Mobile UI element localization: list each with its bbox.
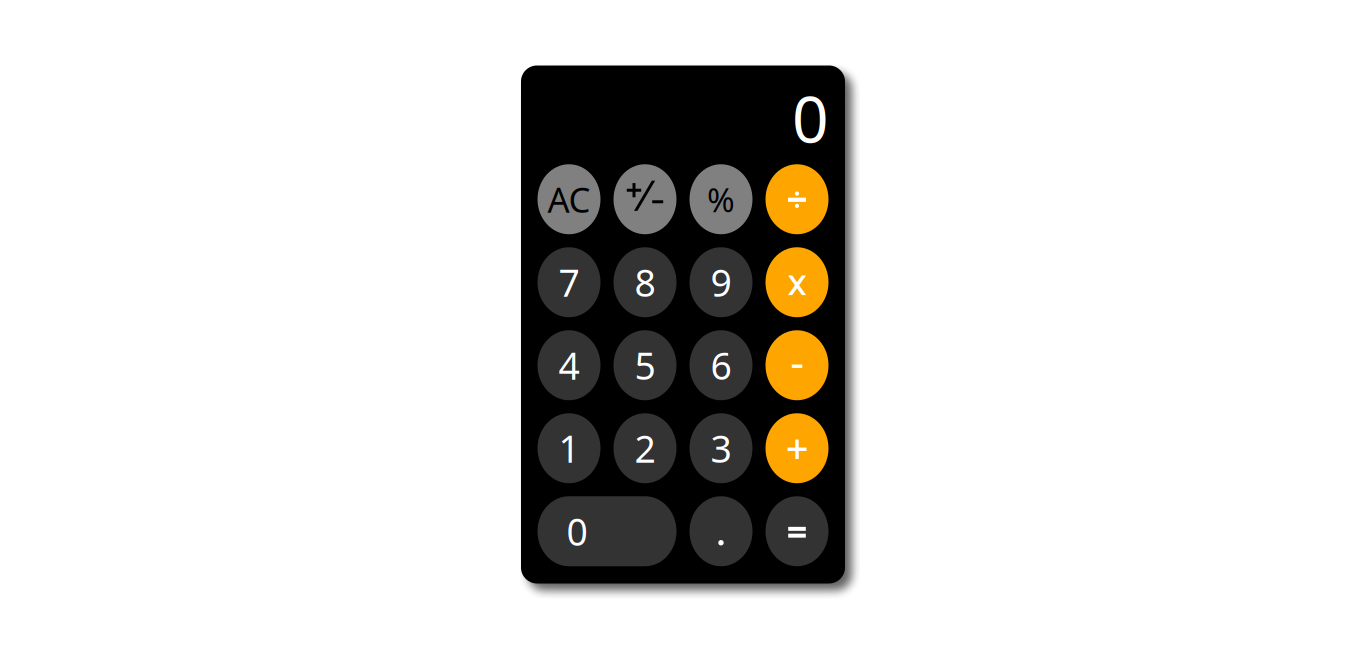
button[interactable]: 6 (689, 330, 752, 400)
button[interactable]: 0 (537, 496, 676, 566)
button[interactable]: 9 (689, 247, 752, 317)
staticText: 8 (634, 257, 655, 307)
button[interactable]: Decimal Point (689, 496, 752, 566)
button[interactable]: Divide (765, 164, 828, 234)
button[interactable]: 2 (613, 413, 676, 483)
button[interactable]: AC (537, 164, 600, 234)
button[interactable]: 4 (537, 330, 600, 400)
staticText: 4 (558, 340, 579, 390)
button[interactable]: 1 (537, 413, 600, 483)
button[interactable]: 5 (613, 330, 676, 400)
button[interactable]: % (689, 164, 752, 234)
button[interactable]: Plus (765, 413, 828, 483)
staticText: % (707, 177, 735, 221)
button[interactable]: Multiply (765, 247, 828, 317)
staticText: 2 (634, 423, 655, 473)
staticText: 3 (710, 423, 731, 473)
staticText: 0 (566, 506, 587, 556)
button[interactable]: 7 (537, 247, 600, 317)
button[interactable]: 8 (613, 247, 676, 317)
staticText: 7 (558, 257, 579, 307)
button[interactable]: Equals (765, 496, 828, 566)
staticText: 9 (710, 257, 731, 307)
staticText: 6 (710, 340, 731, 390)
staticText: 5 (634, 340, 655, 390)
button[interactable]: 3 (689, 413, 752, 483)
button[interactable]: Minus (765, 330, 828, 400)
staticText: AC (547, 176, 590, 222)
button[interactable]: Plus Minus (613, 164, 676, 234)
staticText: 0 (792, 75, 829, 160)
staticText: 1 (558, 423, 579, 473)
